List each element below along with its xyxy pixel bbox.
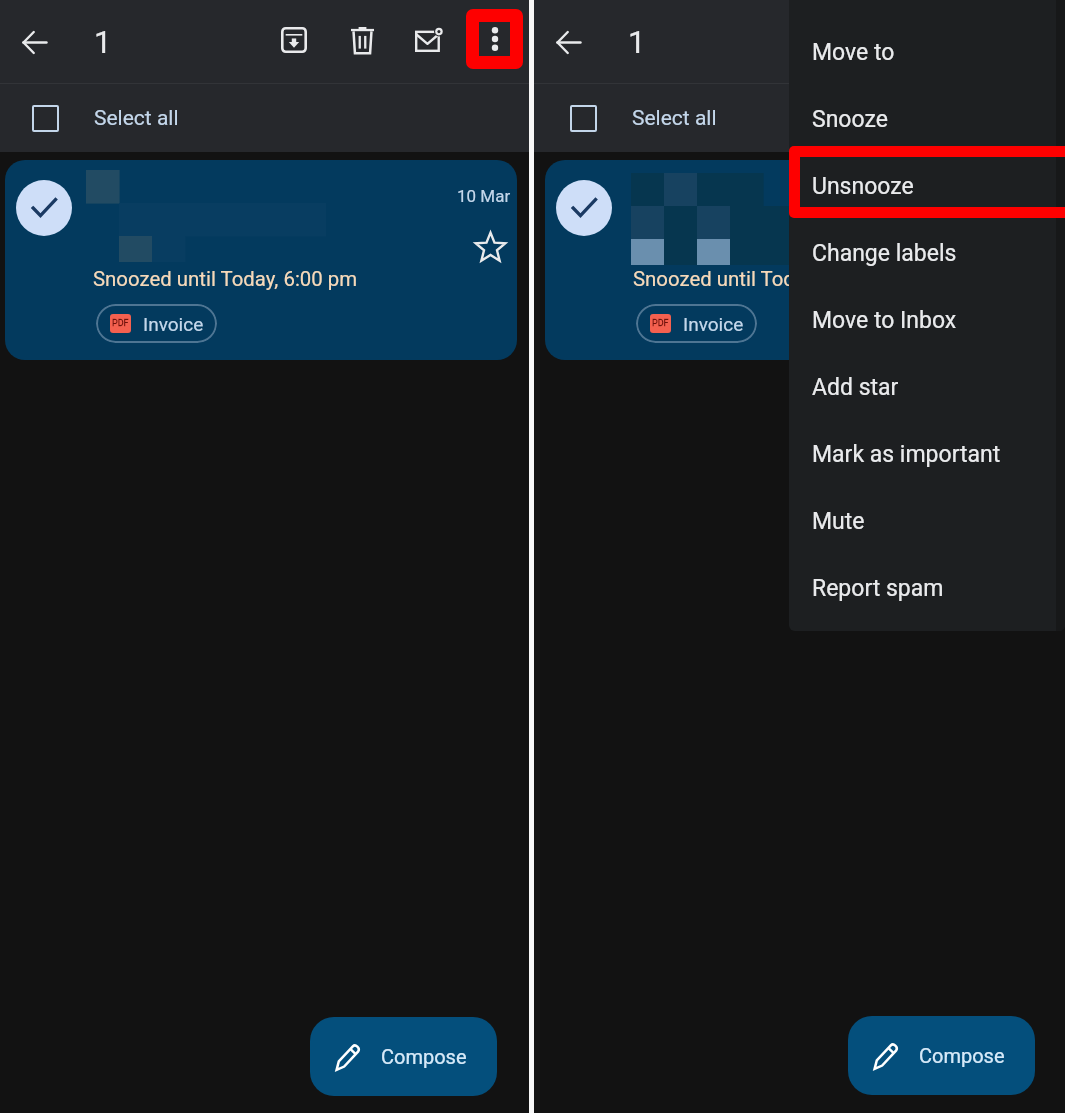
staticText: Snooze bbox=[812, 106, 888, 133]
staticText: 1 bbox=[628, 24, 646, 60]
button[interactable]: Archive bbox=[265, 11, 323, 69]
staticText: Select all bbox=[94, 106, 179, 131]
button[interactable]: Report spam bbox=[789, 555, 1065, 622]
staticText: Mark as important bbox=[812, 441, 1001, 468]
button[interactable]: Add star bbox=[789, 354, 1065, 421]
button[interactable]: Back bbox=[6, 14, 62, 70]
staticText: Compose bbox=[919, 1044, 1005, 1067]
staticText: 1 bbox=[94, 24, 112, 60]
staticText: Invoice bbox=[683, 313, 744, 335]
staticText: 10 Mar bbox=[457, 186, 511, 206]
staticText: Mute bbox=[812, 508, 865, 535]
button[interactable]: Mute bbox=[789, 488, 1065, 555]
button[interactable]: Move to bbox=[789, 19, 1065, 86]
staticText: Select all bbox=[632, 106, 717, 131]
button[interactable]: 10 Mar bbox=[5, 160, 517, 360]
staticText: Compose bbox=[381, 1045, 467, 1068]
button[interactable]: Delete bbox=[333, 11, 391, 69]
staticText: Report spam bbox=[812, 575, 944, 602]
button[interactable]: Select all bbox=[0, 84, 529, 152]
button[interactable]: Change labels bbox=[789, 220, 1065, 287]
button[interactable]: Select all bbox=[534, 84, 1065, 152]
staticText: Unsnooze bbox=[812, 173, 914, 200]
button[interactable]: More options bbox=[466, 9, 523, 69]
staticText: PDF bbox=[652, 318, 669, 329]
button[interactable]: Unsnooze bbox=[789, 153, 1065, 220]
staticText: Change labels bbox=[812, 240, 957, 267]
button[interactable]: Snooze bbox=[789, 86, 1065, 153]
staticText: Invoice bbox=[143, 313, 204, 335]
button[interactable]: Mark as unread bbox=[400, 11, 458, 69]
button[interactable]: Back bbox=[540, 14, 596, 70]
button[interactable]: Star bbox=[468, 225, 512, 269]
staticText: Snoozed until Today, 6:00 pm bbox=[93, 267, 358, 291]
staticText: PDF bbox=[112, 318, 129, 329]
button[interactable]: 10 Mar bbox=[545, 160, 1057, 360]
button[interactable]: Compose bbox=[310, 1017, 497, 1096]
staticText: Add star bbox=[812, 374, 899, 401]
staticText: Move to bbox=[812, 39, 895, 66]
button[interactable]: PDF bbox=[636, 304, 757, 343]
staticText: Snoozed until Today, 6:00 pm bbox=[633, 267, 898, 291]
button[interactable]: Compose bbox=[848, 1016, 1035, 1095]
staticText: Move to Inbox bbox=[812, 307, 957, 334]
button[interactable]: Move to Inbox bbox=[789, 287, 1065, 354]
button[interactable]: PDF bbox=[96, 304, 217, 343]
button[interactable]: Mark as important bbox=[789, 421, 1065, 488]
